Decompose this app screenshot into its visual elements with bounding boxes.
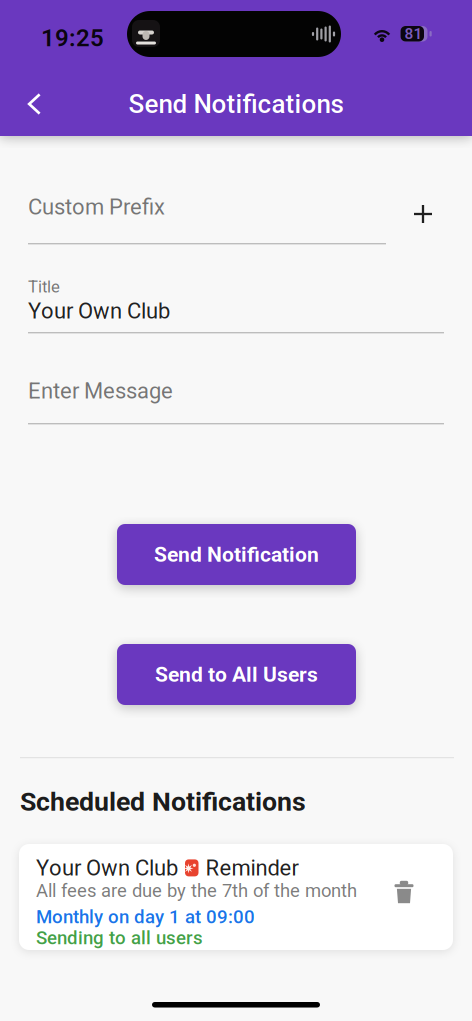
- button[interactable]: Add custom prefix: [405, 196, 441, 232]
- button[interactable]: Send Notification: [117, 524, 356, 585]
- staticText: Custom Prefix: [28, 194, 165, 220]
- staticText: All fees are due by the 7th of the month: [36, 880, 357, 902]
- staticText: Send Notification: [154, 542, 319, 567]
- button[interactable]: Back: [12, 77, 56, 131]
- staticText: Send Notifications: [128, 89, 343, 119]
- staticText: Title: [28, 277, 60, 296]
- staticText: Sending to all users: [36, 927, 203, 949]
- staticText: Your Own Club: [36, 855, 178, 881]
- staticText: Scheduled Notifications: [20, 786, 306, 817]
- button[interactable]: Delete scheduled notification: [384, 866, 424, 910]
- staticText: 81: [404, 25, 422, 43]
- button[interactable]: Send to All Users: [117, 644, 356, 705]
- staticText: Reminder: [205, 855, 298, 881]
- staticText: Send to All Users: [155, 662, 318, 687]
- staticText: Your Own Club: [28, 298, 170, 324]
- staticText: 19:25: [41, 24, 104, 52]
- staticText: Enter Message: [28, 378, 173, 404]
- staticText: Monthly on day 1 at 09:00: [36, 906, 255, 928]
